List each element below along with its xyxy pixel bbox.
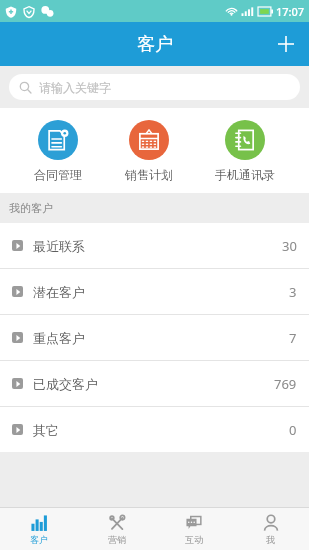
button[interactable]: 手机通讯录 <box>207 118 283 184</box>
staticText: 0 <box>289 421 297 439</box>
button[interactable]: 客户 <box>0 508 78 550</box>
staticText: 营销 <box>108 534 126 545</box>
staticText: 769 <box>274 375 297 393</box>
staticText: 合同管理 <box>34 167 82 182</box>
button[interactable]: Add customer <box>263 22 309 66</box>
button[interactable]: 其它 <box>0 407 309 452</box>
staticText: 我的客户 <box>9 201 53 215</box>
staticText: 30 <box>282 237 297 255</box>
button[interactable]: 营销 <box>78 508 155 550</box>
staticText: 重点客户 <box>33 330 85 346</box>
staticText: 3 <box>289 283 297 301</box>
staticText: 客户 <box>137 33 173 56</box>
button[interactable]: 重点客户 <box>0 315 309 361</box>
button[interactable]: 销售计划 <box>117 118 181 184</box>
staticText: 潜在客户 <box>33 284 85 300</box>
staticText: 17:07 <box>276 4 305 19</box>
staticText: 客户 <box>30 534 48 545</box>
staticText: 销售计划 <box>125 167 173 182</box>
staticText: 互动 <box>185 534 203 545</box>
staticText: 请输入关键字 <box>39 80 111 95</box>
button[interactable]: 潜在客户 <box>0 269 309 315</box>
button[interactable]: 最近联系 <box>0 223 309 269</box>
staticText: 手机通讯录 <box>215 167 275 182</box>
button[interactable]: 我 <box>232 508 309 550</box>
staticText: 7 <box>289 329 297 347</box>
button[interactable]: 请输入关键字 <box>9 74 300 100</box>
staticText: 其它 <box>33 422 59 438</box>
staticText: 我 <box>266 534 275 545</box>
button[interactable]: 互动 <box>155 508 232 550</box>
button[interactable]: 合同管理 <box>26 118 90 184</box>
staticText: 已成交客户 <box>33 376 98 392</box>
button[interactable]: 已成交客户 <box>0 361 309 407</box>
staticText: 最近联系 <box>33 238 85 254</box>
